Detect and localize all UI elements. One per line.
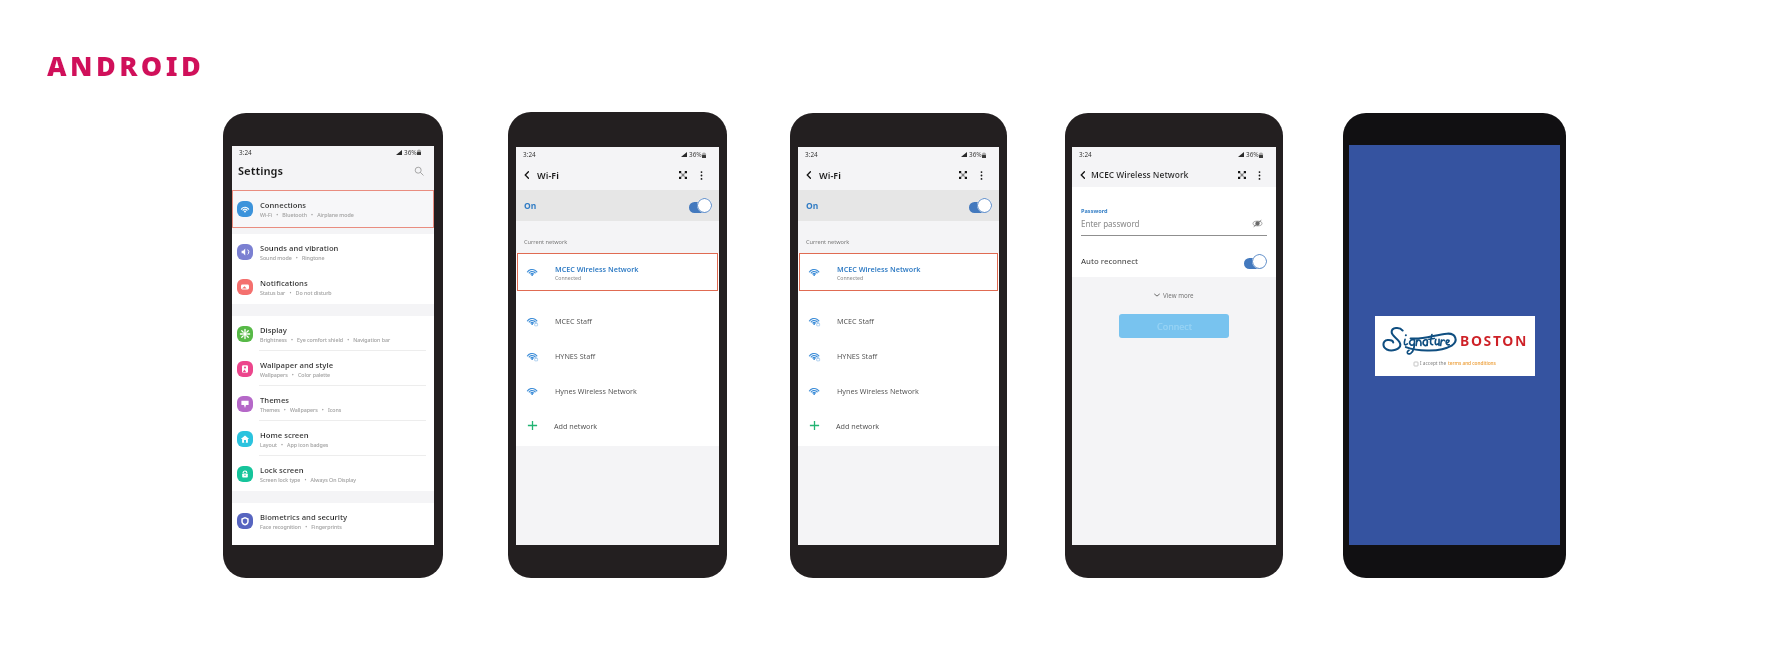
staticText: Screen lock type • Always On Display [260, 476, 356, 483]
staticText: Wallpaper and style [260, 360, 334, 370]
staticText: Themes • Wallpapers • Icons [260, 406, 342, 413]
button[interactable]: HYNES Staff [808, 338, 999, 373]
button[interactable]: Toggle [689, 198, 712, 213]
staticText: Hynes Wireless Network [555, 386, 637, 396]
staticText: Biometrics and security [260, 512, 348, 522]
button[interactable]: Add network [809, 408, 999, 443]
staticText: MCEC Wireless Network [555, 264, 639, 274]
button[interactable]: On [798, 190, 999, 221]
staticText: Sound mode • Ringtone [260, 254, 325, 261]
staticText: Settings [238, 163, 284, 178]
staticText: I accept the [1420, 360, 1448, 367]
staticText: Auto reconnect [1081, 256, 1139, 267]
staticText: Face recognition • Fingerprints [260, 523, 342, 530]
staticText: 36% [1246, 150, 1259, 159]
staticText: 36% [404, 148, 417, 157]
button[interactable]: Toggle [1244, 254, 1267, 269]
button[interactable]: Toggle [969, 198, 992, 213]
staticText: On [524, 200, 537, 212]
button[interactable]: More options [695, 169, 707, 181]
button[interactable]: Back [802, 168, 815, 181]
staticText: MCEC Wireless Network [1091, 169, 1189, 180]
button[interactable]: View more [1150, 289, 1198, 301]
button[interactable]: Show password [1252, 218, 1263, 229]
staticText: Connected [555, 274, 582, 281]
staticText: Wallpapers • Color palette [260, 371, 331, 378]
staticText: MCEC Staff [837, 316, 874, 326]
staticText: 3:24 [523, 150, 536, 159]
button[interactable]: Lock screen [232, 456, 434, 491]
staticText: Add network [836, 421, 880, 431]
staticText: Connections [260, 200, 306, 210]
staticText: 3:24 [1079, 150, 1092, 159]
staticText: Wi-Fi [819, 169, 841, 181]
staticText: 36% [969, 150, 982, 159]
staticText: HYNES Staff [837, 351, 878, 361]
button[interactable]: MCEC Staff [808, 303, 999, 338]
staticText: Current network [806, 238, 850, 246]
staticText: Lock screen [260, 465, 304, 475]
button[interactable]: Home screen [232, 421, 434, 456]
staticText: Sounds and vibration [260, 243, 339, 253]
button[interactable]: Connections [232, 190, 434, 228]
staticText: BOSTON [1460, 331, 1528, 350]
button[interactable]: MCEC Wireless Network [517, 253, 718, 291]
staticText: HYNES Staff [555, 351, 596, 361]
button[interactable]: Biometrics and security [232, 503, 434, 538]
staticText: Wi-Fi • Bluetooth • Airplane mode [260, 211, 354, 218]
staticText: Notifications [260, 278, 308, 288]
button[interactable]: I accept the [1414, 360, 1496, 367]
button[interactable]: Scan QR code [1236, 169, 1248, 181]
staticText: Connect [1157, 320, 1192, 332]
staticText: Wi-Fi [537, 169, 559, 181]
button[interactable]: MCEC Wireless Network [799, 253, 998, 291]
button[interactable]: On [516, 190, 719, 221]
button[interactable]: More options [1253, 169, 1265, 181]
button[interactable]: Scan QR code [956, 168, 969, 181]
staticText: Hynes Wireless Network [837, 386, 919, 396]
button[interactable]: Connect [1119, 314, 1229, 338]
staticText: MCEC Staff [555, 316, 592, 326]
button[interactable]: Search [412, 164, 426, 178]
staticText: Add network [554, 421, 598, 431]
staticText: Status bar • Do not disturb [260, 289, 332, 296]
button[interactable]: Scan QR code [676, 168, 689, 181]
button[interactable]: Back [1076, 168, 1089, 181]
staticText: Brightness • Eye comfort shield • Naviga… [260, 336, 391, 343]
button[interactable]: Display [232, 316, 434, 351]
staticText: 3:24 [805, 150, 818, 159]
button[interactable]: Sounds and vibration [232, 234, 434, 269]
staticText: Enter password [1081, 218, 1140, 229]
button[interactable]: Hynes Wireless Network [808, 373, 999, 408]
button[interactable]: Notifications [232, 269, 434, 304]
staticText: Display [260, 325, 287, 335]
button[interactable]: HYNES Staff [526, 338, 719, 373]
staticText: MCEC Wireless Network [837, 264, 921, 274]
staticText: 36% [689, 150, 702, 159]
button[interactable]: Themes [232, 386, 434, 421]
button[interactable]: More options [975, 169, 987, 181]
button[interactable]: Add network [527, 408, 719, 443]
staticText: View more [1163, 291, 1194, 299]
staticText: Current network [524, 238, 568, 246]
staticText: Themes [260, 395, 290, 405]
staticText: Layout • App icon badges [260, 441, 329, 448]
staticText: On [806, 200, 819, 212]
button[interactable]: Hynes Wireless Network [526, 373, 719, 408]
staticText: ANDROID [47, 47, 205, 84]
staticText: 3:24 [239, 148, 252, 157]
button[interactable]: Back [520, 168, 533, 181]
staticText: terms and conditions [1448, 360, 1496, 367]
staticText: Connected [837, 274, 864, 281]
button[interactable]: Wallpaper and style [232, 351, 434, 386]
staticText: Home screen [260, 430, 309, 440]
button[interactable]: Auto reconnect [1081, 251, 1267, 271]
staticText: Password [1081, 207, 1108, 215]
button[interactable]: MCEC Staff [526, 303, 719, 338]
